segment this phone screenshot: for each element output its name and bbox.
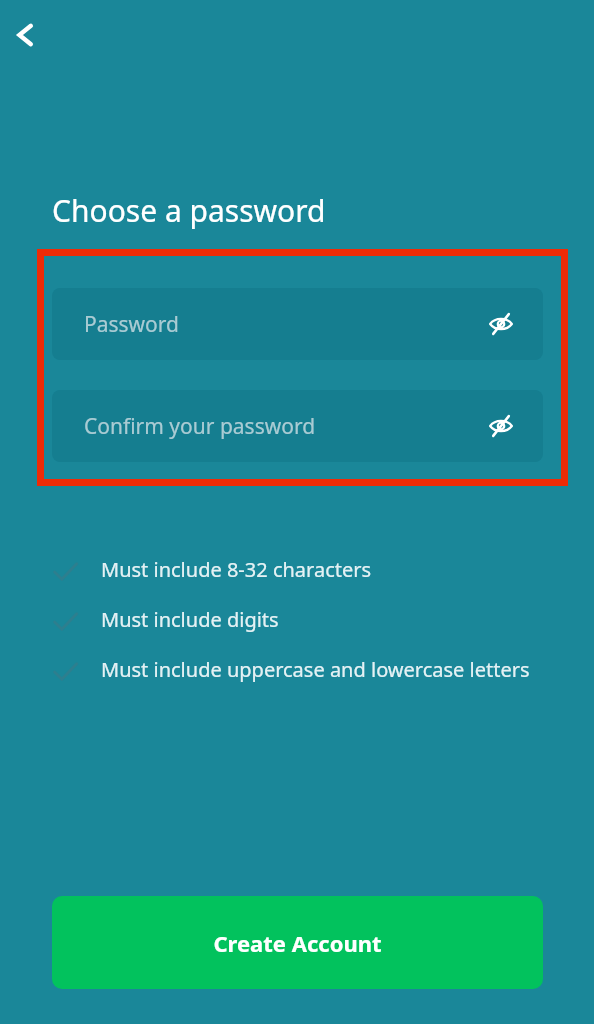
staticText: Must include digits	[101, 606, 279, 633]
staticText: Confirm your password	[84, 412, 316, 441]
button[interactable]: Show password	[479, 302, 523, 346]
staticText: Choose a password	[52, 190, 326, 231]
button[interactable]: Back	[4, 13, 48, 57]
button[interactable]: Password	[52, 288, 543, 360]
button[interactable]: Confirm your password	[52, 390, 543, 462]
button[interactable]: Show confirm password	[479, 404, 523, 448]
staticText: Must include uppercase and lowercase let…	[101, 656, 530, 683]
staticText: Password	[84, 310, 179, 339]
staticText: Must include 8-32 characters	[101, 556, 372, 583]
staticText: Create Account	[213, 928, 382, 958]
button[interactable]: Create Account	[52, 896, 543, 989]
